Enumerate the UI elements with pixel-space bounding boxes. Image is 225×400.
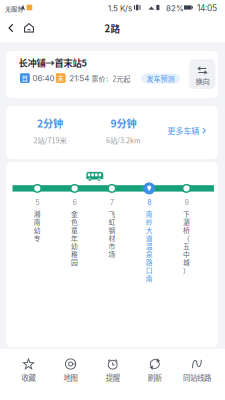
staticText: 刷新: [148, 372, 162, 383]
staticText: 童: [71, 225, 78, 235]
staticText: 2路: [104, 21, 120, 35]
staticText: 发车预测: [146, 73, 174, 84]
staticText: 8: [147, 198, 151, 207]
staticText: 飞: [108, 209, 115, 219]
staticText: 路: [146, 257, 153, 267]
staticText: 同站线路: [183, 372, 211, 383]
button[interactable]: 更多车辆: [159, 119, 215, 143]
staticText: 南: [146, 209, 153, 219]
staticText: 9分钟: [110, 116, 136, 130]
staticText: 虹: [108, 217, 115, 227]
staticText: 金: [71, 209, 78, 219]
staticText: 6: [73, 198, 77, 207]
button[interactable]: 提醒: [92, 352, 134, 386]
staticText: 南: [34, 217, 41, 227]
staticText: 道: [146, 233, 153, 243]
staticText: 地图: [64, 372, 78, 383]
staticText: 温: [146, 241, 153, 251]
staticText: 岭: [146, 217, 153, 227]
staticText: 下: [183, 209, 190, 219]
staticText: 2分钟: [37, 116, 63, 130]
staticText: 2站/719米: [34, 135, 67, 145]
staticText: 大: [146, 225, 153, 235]
staticText: 色: [71, 217, 78, 227]
button[interactable]: 地图: [50, 352, 92, 386]
button[interactable]: 发车预测: [141, 73, 180, 84]
staticText: 5: [35, 198, 39, 207]
staticText: 末: [57, 73, 64, 83]
staticText: 湄: [183, 217, 190, 227]
staticText: （: [183, 233, 190, 243]
staticText: 市: [108, 241, 115, 251]
staticText: 票价：2元起: [92, 74, 131, 84]
staticText: 湘: [34, 209, 41, 219]
staticText: 中: [183, 249, 190, 259]
staticText: 21:54: [69, 73, 89, 83]
staticText: 泉: [146, 249, 153, 259]
staticText: 年: [71, 233, 78, 243]
staticText: 材: [108, 233, 115, 243]
staticText: 幼: [71, 241, 78, 251]
staticText: 口: [146, 265, 153, 275]
staticText: 无服务: [5, 4, 23, 13]
staticText: 更多车辆: [167, 125, 199, 136]
staticText: ）: [183, 265, 190, 275]
button[interactable]: 同站线路: [176, 352, 218, 386]
staticText: 提醒: [106, 372, 120, 383]
staticText: 82%: [166, 3, 184, 13]
staticText: 园: [71, 257, 78, 267]
button[interactable]: 换向: [189, 59, 215, 89]
staticText: 长冲铺→首末站5: [19, 56, 87, 69]
staticText: 9: [184, 198, 188, 207]
staticText: 首: [21, 73, 28, 83]
staticText: 南: [146, 273, 153, 283]
button[interactable]: 收藏: [7, 352, 49, 386]
staticText: 06:40: [32, 73, 54, 83]
staticText: 6站/3.2km: [106, 135, 141, 145]
button[interactable]: 首页: [18, 16, 40, 40]
staticText: 1.5 K/s: [108, 3, 132, 13]
staticText: 7: [110, 198, 114, 207]
staticText: 专: [34, 233, 41, 243]
staticText: 14:05: [197, 3, 217, 13]
staticText: 桥: [183, 225, 190, 235]
staticText: 幼: [34, 225, 41, 235]
button[interactable]: 刷新: [134, 352, 176, 386]
staticText: 稚: [71, 249, 78, 259]
staticText: 钢: [108, 225, 115, 235]
staticText: 场: [108, 249, 115, 259]
button[interactable]: 返回: [1, 16, 21, 40]
staticText: 收藏: [21, 372, 35, 383]
staticText: 城: [183, 257, 190, 267]
staticText: 五: [183, 241, 190, 251]
staticText: 换向: [195, 76, 209, 86]
